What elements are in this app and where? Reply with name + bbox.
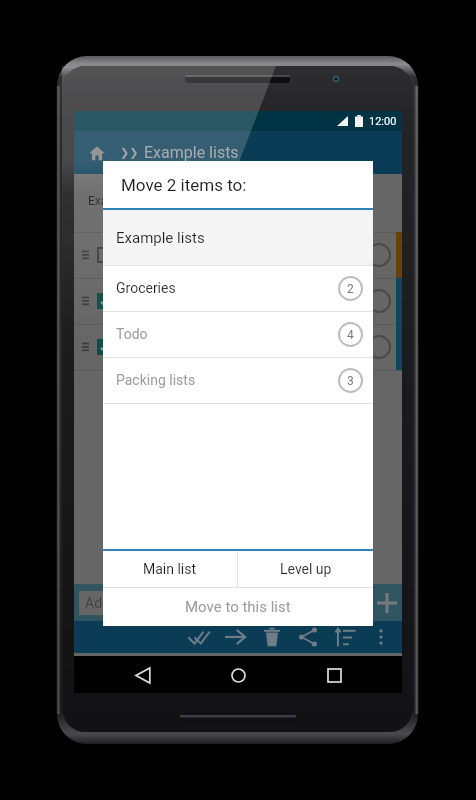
- staticText: Example lists: [116, 229, 205, 247]
- button[interactable]: Main list: [103, 551, 237, 587]
- button[interactable]: Home: [211, 657, 265, 693]
- staticText: 3: [347, 374, 354, 388]
- staticText: 2: [347, 282, 354, 296]
- button[interactable]: Share: [293, 621, 323, 653]
- staticText: 12:00: [369, 115, 397, 128]
- button[interactable]: Sort: [330, 621, 360, 653]
- button[interactable]: Delete: [257, 621, 287, 653]
- button[interactable]: Add an item: [79, 591, 369, 615]
- staticText: ❯❯: [120, 146, 139, 159]
- button[interactable]: Move to this list: [103, 588, 373, 626]
- staticText: Level up: [280, 561, 332, 577]
- button[interactable]: Todo: [103, 311, 373, 357]
- staticText: 4: [347, 328, 354, 342]
- button[interactable]: Move: [220, 621, 250, 653]
- button[interactable]: Back: [116, 657, 170, 693]
- button[interactable]: More options: [366, 621, 396, 653]
- button[interactable]: Select all: [184, 621, 214, 653]
- staticText: Groceries: [116, 280, 176, 296]
- button[interactable]: Packing lists: [103, 357, 373, 403]
- button[interactable]: Example lists: [103, 210, 373, 265]
- button[interactable]: Add: [372, 588, 402, 618]
- staticText: Todo: [116, 326, 148, 342]
- staticText: Main list: [143, 561, 197, 577]
- staticText: Add an item: [85, 595, 160, 611]
- staticText: Example lists: [88, 194, 159, 208]
- staticText: Move to this list: [185, 598, 291, 616]
- staticText: Move 2 items to:: [121, 175, 247, 195]
- button[interactable]: Level up: [238, 551, 373, 587]
- button[interactable]: Groceries: [103, 265, 373, 311]
- button[interactable]: Recents: [307, 657, 361, 693]
- button[interactable]: Home: [74, 131, 120, 174]
- staticText: Packing lists: [116, 372, 196, 388]
- staticText: Example lists: [144, 143, 239, 162]
